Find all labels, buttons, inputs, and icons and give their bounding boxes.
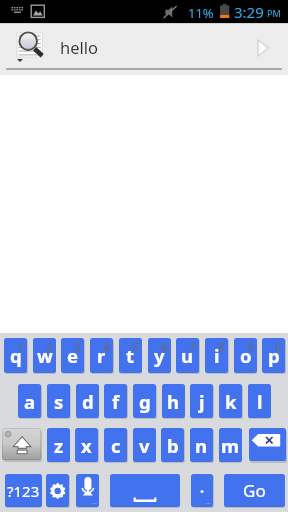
button[interactable]: a — [18, 384, 41, 418]
staticText: u — [181, 343, 194, 368]
button[interactable]: e — [61, 338, 84, 373]
staticText: 3 — [74, 339, 81, 354]
staticText: v — [139, 433, 150, 458]
button[interactable]: Voice input — [76, 474, 99, 507]
staticText: y — [154, 343, 165, 368]
button[interactable]: z — [47, 428, 70, 462]
button[interactable]: Period — [191, 474, 213, 507]
other: Settings — [46, 474, 69, 507]
button[interactable]: d — [76, 384, 99, 418]
button[interactable]: g — [133, 384, 156, 418]
button[interactable]: k — [219, 384, 242, 418]
button[interactable]: x — [75, 428, 98, 462]
staticText: i — [214, 343, 220, 368]
staticText: j — [199, 389, 205, 414]
button[interactable]: Space — [110, 474, 180, 507]
button[interactable]: n — [190, 428, 213, 462]
staticText: w — [37, 343, 53, 368]
button[interactable]: f — [104, 384, 127, 418]
staticText: p — [268, 343, 280, 368]
staticText: 11% — [188, 4, 214, 22]
button[interactable]: r — [90, 338, 113, 373]
staticText: n — [195, 433, 208, 458]
button[interactable]: p — [262, 338, 285, 373]
button[interactable]: b — [161, 428, 184, 462]
button[interactable]: Go — [252, 35, 280, 63]
staticText: a — [24, 389, 36, 414]
staticText: 3:29 — [234, 2, 264, 22]
button[interactable]: Backspace — [249, 428, 286, 461]
staticText: PM — [267, 7, 281, 19]
button[interactable]: y — [148, 338, 171, 373]
staticText: g — [139, 389, 151, 414]
staticText: 0 — [275, 339, 282, 354]
button[interactable]: Settings — [46, 474, 69, 507]
button[interactable]: w — [33, 338, 56, 373]
staticText: d — [82, 389, 94, 414]
staticText: hello — [60, 36, 98, 58]
staticText: k — [225, 389, 237, 414]
staticText: 4 — [103, 339, 110, 354]
button[interactable]: Go — [224, 474, 285, 507]
staticText: 6 — [161, 339, 168, 354]
staticText: x — [81, 433, 92, 458]
staticText: Go — [243, 479, 266, 502]
staticText: q — [10, 343, 22, 368]
other: Backspace — [249, 428, 286, 461]
staticText: c — [111, 433, 121, 458]
staticText: 7 — [189, 339, 196, 354]
button[interactable]: t — [119, 338, 142, 373]
staticText: z — [54, 433, 64, 458]
button[interactable]: Shift — [2, 428, 41, 460]
staticText: b — [167, 433, 179, 458]
staticText: 1 — [17, 339, 24, 354]
staticText: 9 — [247, 339, 254, 354]
staticText: r — [97, 343, 106, 368]
other: Space — [110, 474, 180, 507]
staticText: s — [54, 389, 64, 414]
staticText: m — [221, 433, 240, 458]
staticText: o — [240, 343, 252, 368]
staticText: 2 — [46, 339, 53, 354]
staticText: e — [67, 343, 79, 368]
staticText: f — [112, 389, 120, 414]
button[interactable]: Search — [17, 33, 44, 57]
button[interactable]: q — [4, 338, 27, 373]
staticText: t — [126, 343, 135, 368]
button[interactable]: j — [190, 384, 213, 418]
button[interactable]: l — [248, 384, 271, 418]
button[interactable]: o — [234, 338, 257, 373]
button[interactable]: i — [205, 338, 228, 373]
button[interactable]: v — [133, 428, 156, 462]
staticText: 8 — [218, 339, 225, 354]
button[interactable]: ?123 — [5, 474, 42, 507]
other: Period — [191, 474, 213, 507]
button[interactable]: s — [47, 384, 70, 418]
button[interactable]: m — [219, 428, 242, 462]
button[interactable]: h — [162, 384, 185, 418]
staticText: ?123 — [7, 481, 40, 501]
button[interactable]: c — [104, 428, 127, 462]
staticText: h — [167, 389, 180, 414]
button[interactable]: u — [176, 338, 199, 373]
staticText: l — [257, 389, 263, 414]
staticText: 5 — [132, 339, 139, 354]
other: Voice input — [76, 474, 99, 507]
